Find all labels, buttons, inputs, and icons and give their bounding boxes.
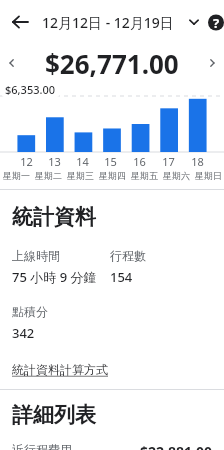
staticText: $26,771.00 xyxy=(45,46,179,81)
staticText: 16 xyxy=(133,154,146,169)
staticText: 星期四 xyxy=(99,170,126,181)
staticText: 12 xyxy=(20,154,33,169)
staticText: 342 xyxy=(12,324,35,342)
button[interactable]: Change date range xyxy=(180,8,208,36)
staticText: 上線時間 xyxy=(12,248,60,263)
staticText: 統計資料計算方式 xyxy=(12,362,108,377)
staticText: 12月12日 - 12月19日 xyxy=(42,13,174,32)
staticText: 統計資料 xyxy=(12,204,96,230)
button[interactable]: Back xyxy=(0,2,40,42)
staticText: 近行程費用 xyxy=(12,442,72,450)
button[interactable]: 統計資料計算方式 xyxy=(12,362,108,377)
staticText: 15 xyxy=(104,154,117,169)
staticText: $6,353.00 xyxy=(5,82,56,97)
staticText: 星期六 xyxy=(163,170,190,181)
staticText: 星期三 xyxy=(67,170,94,181)
staticText: 13 xyxy=(48,154,61,169)
button[interactable]: 近行程費用 xyxy=(12,442,212,450)
staticText: 17 xyxy=(162,154,175,169)
staticText: ? xyxy=(213,14,220,32)
staticText: 星期二 xyxy=(35,170,62,181)
staticText: 75 小時 9 分鐘 xyxy=(12,268,97,286)
staticText: 154 xyxy=(110,268,133,286)
staticText: 星期日 xyxy=(195,170,222,181)
staticText: 點積分 xyxy=(12,304,48,319)
staticText: 14 xyxy=(76,154,89,169)
staticText: 詳細列表 xyxy=(12,402,96,428)
staticText: 星期五 xyxy=(131,170,158,181)
staticText: 行程數 xyxy=(110,248,146,263)
staticText: 星期一 xyxy=(3,170,30,181)
staticText: $22,881.00 xyxy=(140,442,212,450)
button[interactable]: Previous week xyxy=(0,51,24,75)
button[interactable]: Next week xyxy=(200,51,224,75)
button[interactable]: Help xyxy=(208,2,224,42)
staticText: 18 xyxy=(191,154,204,169)
